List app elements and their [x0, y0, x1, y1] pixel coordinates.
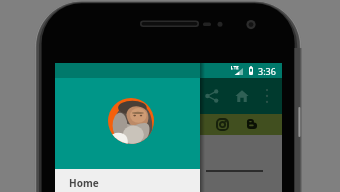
button[interactable]: Share	[205, 89, 219, 103]
button[interactable]: Home	[235, 89, 249, 103]
button[interactable]: Instagram	[216, 118, 229, 131]
button[interactable]: More options	[262, 87, 272, 105]
staticText: Home	[69, 176, 99, 190]
button[interactable]: Blogger	[246, 118, 258, 130]
staticText: 3:36	[258, 65, 276, 77]
button[interactable]: Home	[55, 169, 200, 192]
